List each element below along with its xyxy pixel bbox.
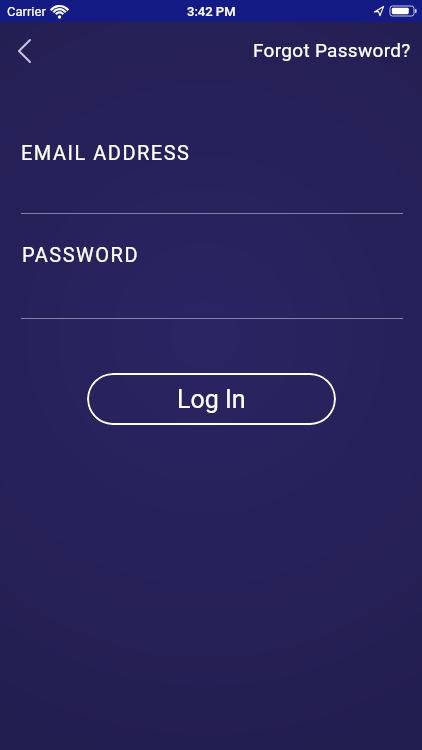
staticText: Carrier xyxy=(7,4,46,19)
button[interactable]: Forgot Password? xyxy=(253,39,411,61)
staticText: PASSWORD xyxy=(22,243,140,266)
staticText: Log In xyxy=(177,385,246,414)
button[interactable] xyxy=(9,33,39,69)
staticText: EMAIL ADDRESS xyxy=(21,141,191,164)
staticText: 3:42 PM xyxy=(187,4,236,19)
staticText: Forgot Password? xyxy=(253,39,411,61)
button[interactable]: Log In xyxy=(87,373,336,425)
